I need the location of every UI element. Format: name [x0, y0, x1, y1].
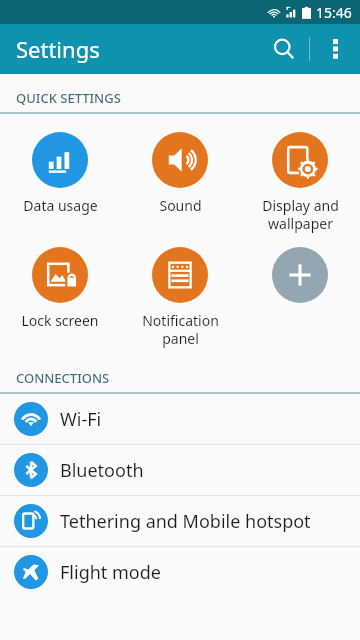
button[interactable]: Flight mode — [0, 547, 360, 597]
staticText: Display and wallpaper — [262, 196, 339, 233]
button[interactable]: Lock screen — [0, 243, 120, 334]
button[interactable]: Bluetooth — [0, 445, 360, 495]
staticText: Bluetooth — [60, 458, 144, 483]
button[interactable]: Wi-Fi — [0, 394, 360, 444]
staticText: Tethering and Mobile hotspot — [60, 509, 311, 534]
staticText: Wi-Fi — [60, 407, 102, 432]
staticText: Sound — [159, 196, 202, 215]
button[interactable]: More options — [310, 24, 360, 74]
button[interactable]: Data usage — [0, 128, 120, 219]
button[interactable]: Notification panel — [120, 243, 240, 352]
staticText: 15:46 — [316, 3, 352, 22]
button[interactable]: Add shortcut — [240, 243, 360, 315]
button[interactable]: Search — [259, 24, 309, 74]
staticText: Flight mode — [60, 560, 161, 585]
button[interactable]: Sound — [120, 128, 240, 219]
staticText: Data usage — [23, 196, 98, 215]
staticText: Notification panel — [142, 311, 219, 348]
staticText: CONNECTIONS — [16, 369, 110, 387]
button[interactable]: Tethering and Mobile hotspot — [0, 496, 360, 546]
button[interactable]: Display and wallpaper — [240, 128, 360, 237]
staticText: Settings — [16, 34, 100, 64]
staticText: Lock screen — [21, 311, 99, 330]
staticText: QUICK SETTINGS — [16, 89, 121, 107]
